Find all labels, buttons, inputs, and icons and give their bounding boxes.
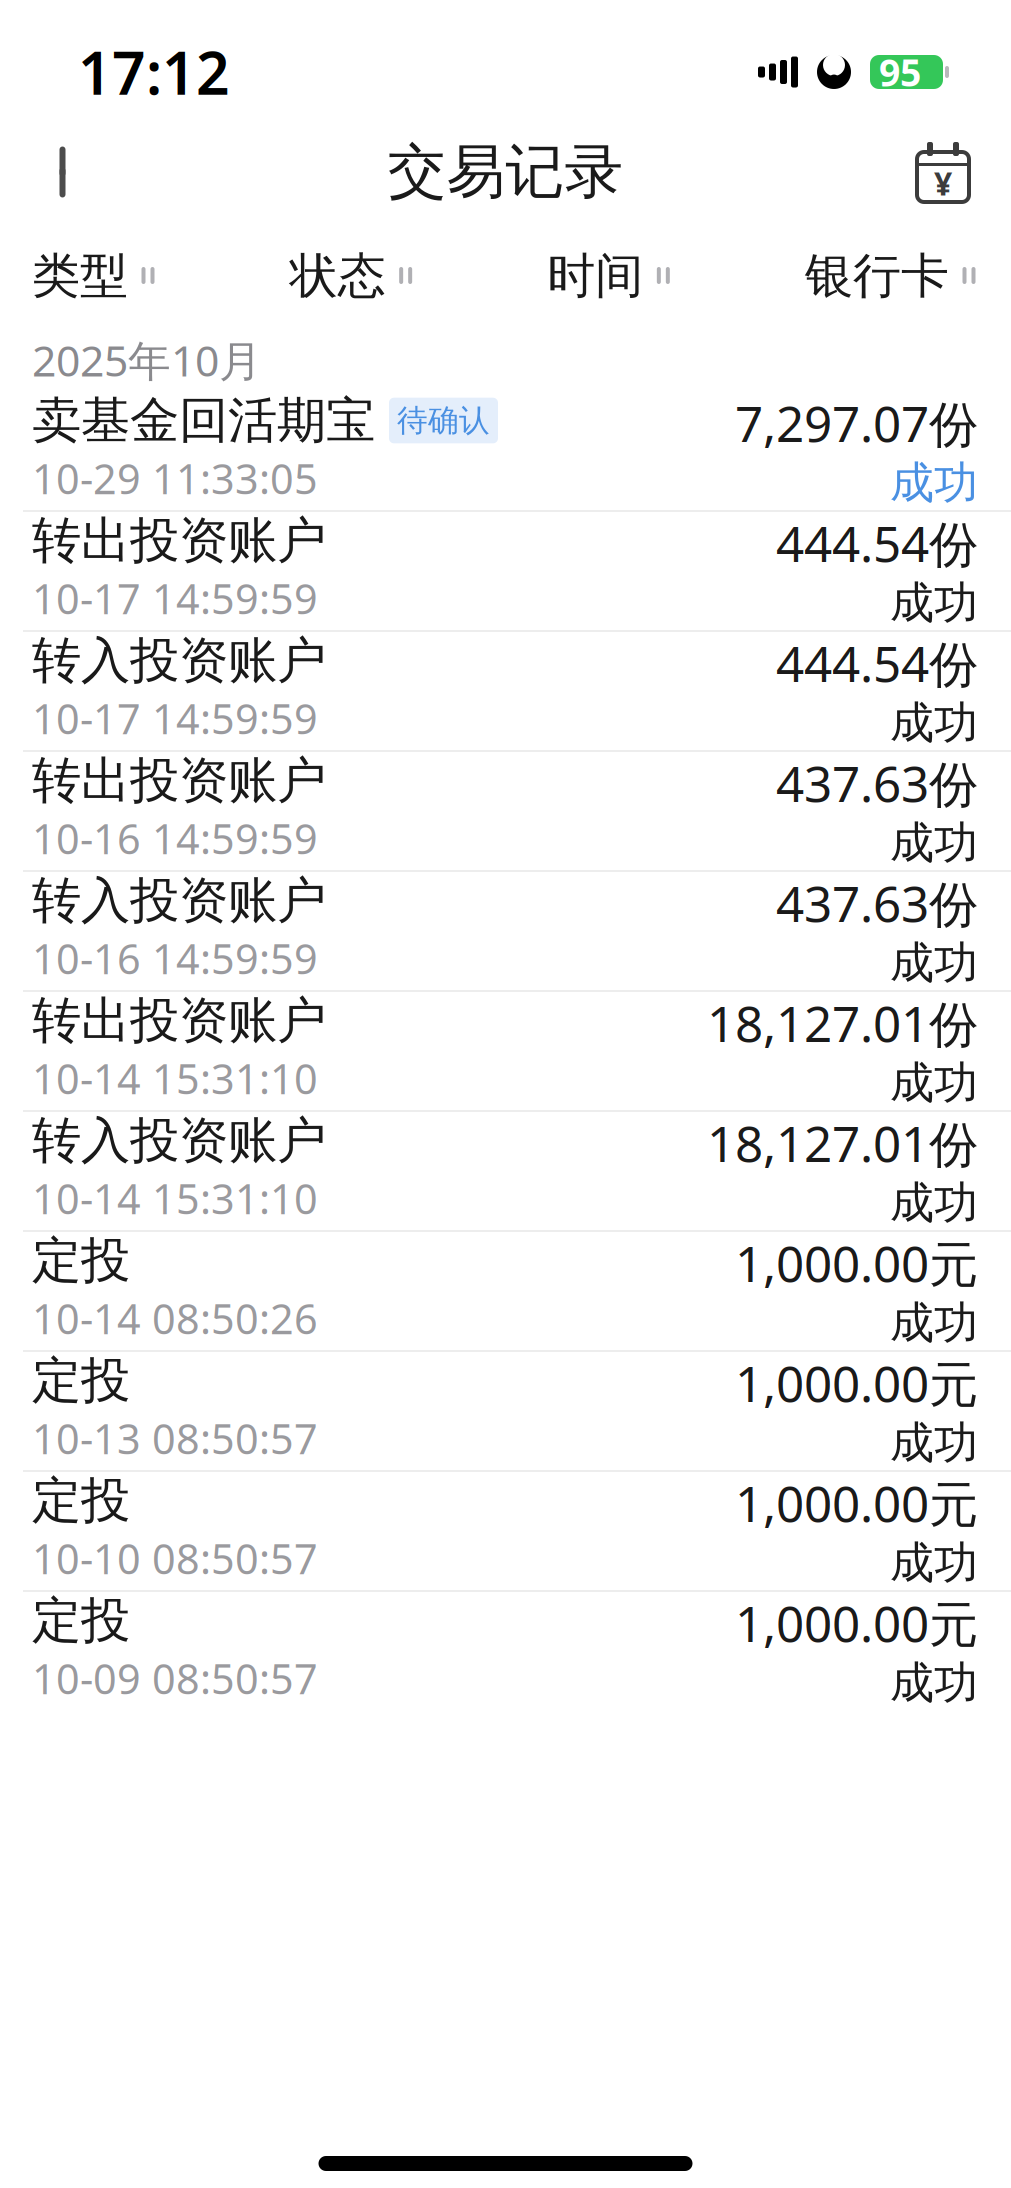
staticText: 成功 — [890, 936, 978, 990]
staticText: 18,127.01份 — [707, 990, 978, 1056]
staticText: 444.54份 — [776, 510, 978, 576]
staticText: 7,297.07份 — [735, 390, 978, 456]
staticText: 成功 — [890, 1296, 978, 1350]
button[interactable]: 按日期筛选 — [895, 124, 991, 220]
button[interactable]: 转入投资账户 — [0, 1112, 1011, 1230]
button[interactable]: 卖基金回活期宝 — [0, 392, 1011, 510]
staticText: 437.63份 — [776, 870, 978, 936]
button[interactable]: 定投 — [0, 1592, 1011, 1710]
staticText: 银行卡 — [805, 246, 949, 305]
staticText: 转入投资账户 — [32, 1110, 326, 1171]
staticText: 时间 — [547, 246, 643, 305]
button[interactable]: 定投 — [0, 1352, 1011, 1470]
button[interactable]: 类型 — [32, 232, 160, 319]
staticText: 定投 — [32, 1350, 130, 1411]
staticText: 10-09 08:50:57 — [32, 1651, 318, 1706]
staticText: 转出投资账户 — [32, 510, 326, 571]
button[interactable]: 定投 — [0, 1232, 1011, 1350]
staticText: 成功 — [890, 576, 978, 630]
button[interactable]: 转出投资账户 — [0, 752, 1011, 870]
button[interactable]: 银行卡 — [805, 232, 981, 319]
staticText: 10-14 15:31:10 — [32, 1171, 318, 1226]
staticText: 1,000.00元 — [735, 1230, 978, 1296]
staticText: 转出投资账户 — [32, 990, 326, 1051]
staticText: 10-14 15:31:10 — [32, 1051, 318, 1106]
staticText: 10-16 14:59:59 — [32, 931, 318, 986]
staticText: 定投 — [32, 1590, 130, 1651]
staticText: 成功 — [890, 1056, 978, 1110]
staticText: 成功 — [890, 696, 978, 750]
staticText: 转入投资账户 — [32, 870, 326, 931]
staticText: 10-13 08:50:57 — [32, 1411, 318, 1466]
staticText: 交易记录 — [387, 136, 623, 208]
staticText: 1,000.00元 — [735, 1470, 978, 1536]
button[interactable]: 转入投资账户 — [0, 632, 1011, 750]
staticText: 1,000.00元 — [735, 1590, 978, 1656]
staticText: 10-17 14:59:59 — [32, 691, 318, 746]
button[interactable]: 转出投资账户 — [0, 512, 1011, 630]
staticText: 卖基金回活期宝 — [32, 390, 375, 451]
staticText: 状态 — [290, 246, 386, 305]
staticText: 444.54份 — [776, 630, 978, 696]
staticText: 定投 — [32, 1230, 130, 1291]
staticText: 2025年10月 — [32, 332, 262, 388]
staticText: 转入投资账户 — [32, 630, 326, 691]
staticText: 95 — [879, 47, 921, 97]
staticText: 437.63份 — [776, 750, 978, 816]
button[interactable]: 状态 — [290, 232, 418, 319]
button[interactable]: 转出投资账户 — [0, 992, 1011, 1110]
staticText: 成功 — [890, 1656, 978, 1710]
staticText: 10-14 08:50:26 — [32, 1291, 318, 1346]
staticText: 成功 — [890, 816, 978, 870]
staticText: 成功 — [890, 1416, 978, 1470]
staticText: 10-17 14:59:59 — [32, 571, 318, 626]
staticText: 18,127.01份 — [707, 1110, 978, 1176]
staticText: 17:12 — [78, 33, 230, 111]
staticText: 转出投资账户 — [32, 750, 326, 811]
staticText: 成功 — [890, 1536, 978, 1590]
button[interactable]: 转入投资账户 — [0, 872, 1011, 990]
staticText: 1,000.00元 — [735, 1350, 978, 1416]
staticText: ¥ — [934, 162, 952, 204]
staticText: 待确认 — [397, 402, 490, 439]
staticText: 10-10 08:50:57 — [32, 1531, 318, 1586]
staticText: 成功 — [890, 1176, 978, 1230]
staticText: 10-16 14:59:59 — [32, 811, 318, 866]
button[interactable]: 定投 — [0, 1472, 1011, 1590]
button[interactable]: 时间 — [547, 232, 675, 319]
staticText: 成功 — [890, 456, 978, 510]
staticText: 类型 — [32, 246, 128, 305]
staticText: 定投 — [32, 1470, 130, 1531]
button[interactable]: 返回 — [20, 124, 116, 220]
staticText: 10-29 11:33:05 — [32, 451, 318, 506]
